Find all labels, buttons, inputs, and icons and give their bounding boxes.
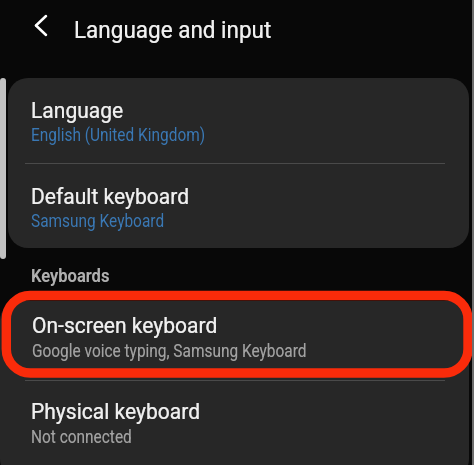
staticText: Keyboards	[31, 266, 110, 287]
staticText: On-screen keyboard	[32, 312, 218, 338]
button[interactable]	[8, 78, 469, 164]
staticText: English (United Kingdom)	[31, 125, 205, 146]
button[interactable]: Navigate up	[25, 11, 57, 41]
staticText: Language and input	[74, 16, 272, 43]
staticText: Language	[31, 97, 124, 123]
button[interactable]	[8, 164, 469, 248]
button[interactable]	[0, 381, 469, 465]
staticText: Samsung Keyboard	[31, 211, 164, 232]
staticText: Google voice typing, Samsung Keyboard	[32, 341, 306, 362]
staticText: Default keyboard	[31, 183, 190, 209]
staticText: Not connected	[31, 427, 132, 448]
staticText: Physical keyboard	[31, 398, 200, 424]
button[interactable]	[0, 301, 469, 380]
